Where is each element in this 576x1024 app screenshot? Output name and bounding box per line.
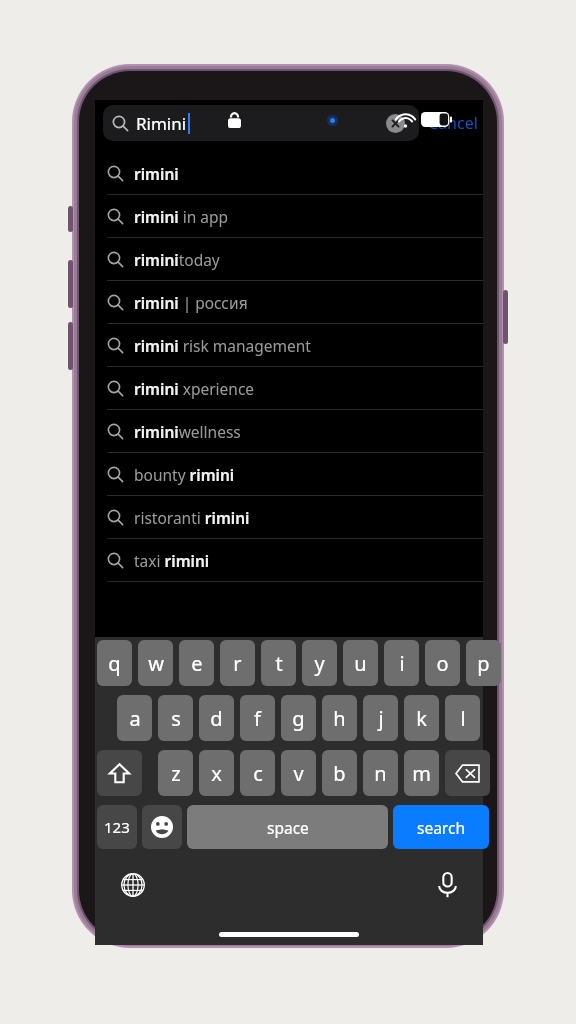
staticText: t bbox=[275, 650, 283, 677]
staticText: q bbox=[108, 650, 121, 677]
button[interactable]: rimini xperience bbox=[95, 367, 483, 409]
button[interactable]: Rimini bbox=[103, 105, 419, 141]
staticText: 123 bbox=[104, 817, 130, 837]
staticText: rimini | россия bbox=[134, 292, 248, 313]
button[interactable]: space bbox=[187, 805, 388, 849]
button[interactable]: f bbox=[240, 695, 275, 741]
button[interactable]: a bbox=[117, 695, 152, 741]
button[interactable]: e bbox=[179, 640, 214, 686]
staticText: u bbox=[354, 650, 367, 677]
staticText: f bbox=[254, 705, 261, 732]
button[interactable]: h bbox=[322, 695, 357, 741]
staticText: m bbox=[412, 760, 431, 787]
staticText: j bbox=[378, 705, 384, 732]
staticText: p bbox=[477, 650, 490, 677]
button[interactable]: w bbox=[138, 640, 173, 686]
button[interactable]: riminitoday bbox=[95, 238, 483, 280]
staticText: ristoranti rimini bbox=[134, 507, 250, 528]
button[interactable]: t bbox=[261, 640, 296, 686]
staticText: b bbox=[333, 760, 346, 787]
button[interactable]: search bbox=[393, 805, 489, 849]
staticText: rimini in app bbox=[134, 206, 229, 227]
staticText: y bbox=[314, 650, 325, 677]
staticText: r bbox=[233, 650, 242, 677]
button[interactable]: u bbox=[343, 640, 378, 686]
other: Power bbox=[503, 290, 508, 344]
staticText: a bbox=[129, 705, 141, 732]
button[interactable]: o bbox=[425, 640, 460, 686]
staticText: o bbox=[436, 650, 449, 677]
other: Silent switch bbox=[68, 206, 73, 232]
button[interactable]: Shift bbox=[97, 750, 142, 796]
button[interactable]: ristoranti rimini bbox=[95, 496, 483, 538]
staticText: rimini xperience bbox=[134, 378, 255, 399]
button[interactable]: x bbox=[199, 750, 234, 796]
button[interactable]: Emoji bbox=[142, 805, 182, 849]
staticText: search bbox=[417, 817, 465, 838]
button[interactable]: l bbox=[445, 695, 480, 741]
staticText: w bbox=[148, 650, 164, 677]
button[interactable]: c bbox=[240, 750, 275, 796]
staticText: g bbox=[292, 705, 305, 732]
button[interactable]: rimini | россия bbox=[95, 281, 483, 323]
staticText: riminitoday bbox=[134, 249, 220, 270]
button[interactable]: v bbox=[281, 750, 316, 796]
button[interactable]: Cancel bbox=[422, 104, 484, 142]
button[interactable]: k bbox=[404, 695, 439, 741]
button[interactable]: Clear text bbox=[386, 114, 405, 133]
button[interactable]: Numbers bbox=[97, 805, 137, 849]
staticText: c bbox=[253, 760, 263, 787]
button[interactable]: s bbox=[158, 695, 193, 741]
staticText: rimini bbox=[134, 163, 179, 184]
button[interactable]: i bbox=[384, 640, 419, 686]
staticText: l bbox=[460, 705, 466, 732]
staticText: i bbox=[399, 650, 405, 677]
button[interactable]: rimini risk management bbox=[95, 324, 483, 366]
button[interactable]: rimini in app bbox=[95, 195, 483, 237]
staticText: s bbox=[171, 705, 181, 732]
button[interactable]: j bbox=[363, 695, 398, 741]
button[interactable]: y bbox=[302, 640, 337, 686]
staticText: Cancel bbox=[428, 112, 478, 134]
staticText: x bbox=[211, 760, 222, 787]
other: Volume up bbox=[68, 260, 73, 308]
button[interactable]: q bbox=[97, 640, 132, 686]
staticText: h bbox=[333, 705, 346, 732]
button[interactable]: riminiwellness bbox=[95, 410, 483, 452]
button[interactable]: p bbox=[466, 640, 501, 686]
button[interactable]: rimini bbox=[95, 152, 483, 194]
staticText: z bbox=[171, 760, 181, 787]
button[interactable]: bounty rimini bbox=[95, 453, 483, 495]
staticText: d bbox=[210, 705, 223, 732]
staticText: Rimini bbox=[136, 112, 187, 135]
staticText: rimini risk management bbox=[134, 335, 311, 356]
other: Volume down bbox=[68, 322, 73, 370]
staticText: taxi rimini bbox=[134, 550, 210, 571]
staticText: space bbox=[267, 817, 309, 838]
button[interactable]: Backspace bbox=[445, 750, 490, 796]
staticText: bounty rimini bbox=[134, 464, 235, 485]
button[interactable]: g bbox=[281, 695, 316, 741]
staticText: e bbox=[191, 650, 203, 677]
button[interactable]: Dictate bbox=[427, 865, 467, 905]
button[interactable]: d bbox=[199, 695, 234, 741]
button[interactable]: taxi rimini bbox=[95, 539, 483, 581]
staticText: k bbox=[416, 705, 427, 732]
button[interactable]: m bbox=[404, 750, 439, 796]
button[interactable]: n bbox=[363, 750, 398, 796]
button[interactable]: r bbox=[220, 640, 255, 686]
button[interactable]: b bbox=[322, 750, 357, 796]
button[interactable]: z bbox=[158, 750, 193, 796]
staticText: n bbox=[374, 760, 387, 787]
button[interactable]: Change keyboard bbox=[113, 865, 153, 905]
staticText: riminiwellness bbox=[134, 421, 241, 442]
staticText: v bbox=[293, 760, 304, 787]
